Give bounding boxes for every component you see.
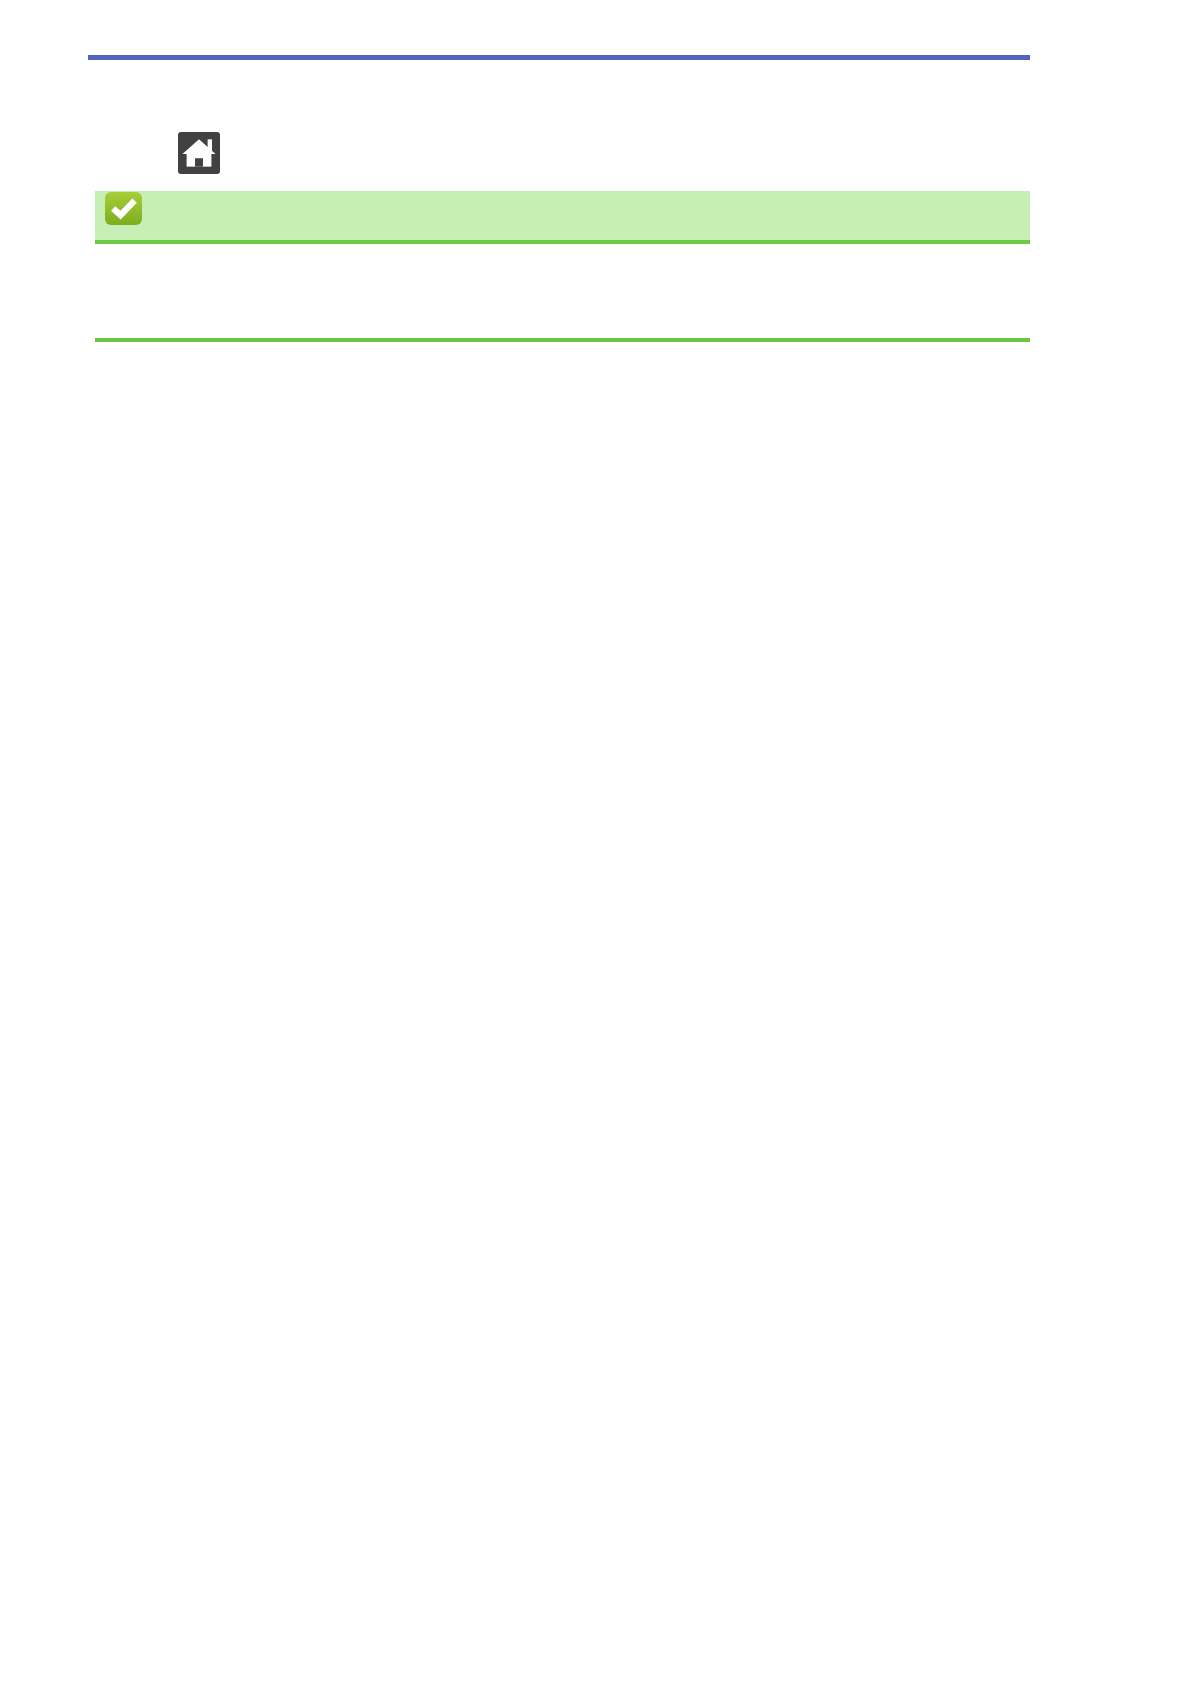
button[interactable] xyxy=(95,191,1030,244)
button[interactable]: Home xyxy=(178,132,220,174)
